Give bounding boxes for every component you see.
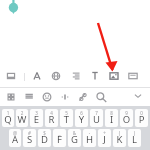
button[interactable]: Emoji [39, 89, 55, 105]
button[interactable]: ( [113, 129, 126, 147]
staticText: 8 [105, 110, 118, 116]
button[interactable]: @ [9, 129, 21, 147]
button[interactable]: Comment [125, 68, 141, 84]
staticText: ) [128, 130, 141, 136]
button[interactable]: 2 [16, 109, 28, 127]
staticText: G [68, 133, 81, 146]
button[interactable]: Apps [3, 89, 19, 105]
button[interactable]: Audio [57, 89, 73, 105]
button[interactable]: 8 [105, 109, 118, 127]
button[interactable]: + [98, 129, 111, 147]
staticText: 7 [90, 110, 103, 116]
staticText: @ [9, 130, 21, 136]
button[interactable]: 5 [60, 109, 73, 127]
staticText: 6 [75, 110, 88, 116]
button[interactable]: - [83, 129, 96, 147]
staticText: 0 [135, 110, 148, 116]
button[interactable]: Text style [87, 68, 103, 84]
staticText: U [90, 113, 103, 126]
staticText: T [60, 113, 73, 126]
staticText: 4 [45, 110, 58, 116]
button[interactable]: # [23, 129, 36, 147]
staticText: 5 [60, 110, 73, 116]
button[interactable]: & [68, 129, 81, 147]
staticText: # [23, 130, 36, 136]
staticText: E [30, 113, 43, 126]
button[interactable]: Text color [48, 68, 64, 84]
button[interactable]: Alignment [68, 68, 84, 84]
staticText: ( [113, 130, 126, 136]
staticText: D [38, 133, 51, 146]
button[interactable]: Table [21, 89, 37, 105]
staticText: W [16, 113, 28, 126]
staticText: + [98, 130, 111, 136]
button[interactable]: Font [29, 68, 45, 84]
staticText: - [83, 130, 96, 136]
staticText: A [9, 133, 21, 146]
staticText: H [83, 133, 96, 146]
button[interactable]: Attach [75, 89, 91, 105]
staticText: Y [75, 113, 88, 126]
button[interactable]: Insert image [106, 68, 122, 84]
button[interactable]: 4 [45, 109, 58, 127]
button[interactable]: 9 [120, 109, 133, 127]
staticText: 1 [2, 110, 14, 116]
button[interactable]: _ [53, 129, 66, 147]
staticText: Q [2, 113, 14, 126]
staticText: P [135, 113, 148, 126]
button[interactable]: Search [93, 89, 109, 105]
button[interactable]: Keyboard [3, 68, 19, 84]
staticText: S [23, 133, 36, 146]
button[interactable]: $ [38, 129, 51, 147]
staticText: 2 [16, 110, 28, 116]
other: Location marker [7, 0, 21, 18]
staticText: F [53, 133, 66, 146]
button[interactable]: 1 [2, 109, 14, 127]
staticText: 3 [30, 110, 43, 116]
staticText: 9 [120, 110, 133, 116]
button[interactable]: 0 [135, 109, 148, 127]
staticText: I [105, 113, 118, 126]
button[interactable]: 7 [90, 109, 103, 127]
staticText: J [98, 133, 111, 146]
button[interactable]: 3 [30, 109, 43, 127]
staticText: _ [53, 130, 66, 136]
button[interactable]: 6 [75, 109, 88, 127]
staticText: K [113, 133, 126, 146]
staticText: & [68, 130, 81, 136]
staticText: O [120, 113, 133, 126]
button[interactable]: ) [128, 129, 141, 147]
staticText: L [128, 133, 141, 146]
button[interactable]: Collapse [131, 89, 145, 103]
staticText: R [45, 113, 58, 126]
staticText: $ [38, 130, 51, 136]
